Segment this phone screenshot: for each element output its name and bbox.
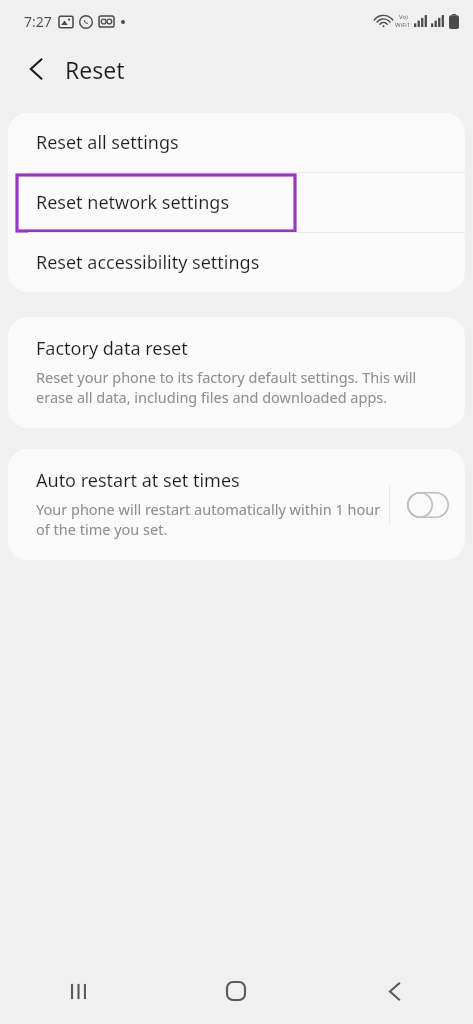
button[interactable]: Reset accessibility settings (8, 233, 465, 292)
staticText: Vo) (399, 13, 408, 21)
button[interactable]: Auto restart toggle, off (407, 492, 449, 518)
button[interactable]: Back (315, 958, 473, 1024)
button[interactable]: Recents (0, 958, 157, 1024)
staticText: Reset your phone to its factory default … (36, 367, 443, 408)
button[interactable]: Reset all settings (8, 113, 465, 172)
staticText: Reset all settings (36, 130, 179, 155)
staticText: Auto restart at set times (36, 468, 240, 493)
staticText: Reset accessibility settings (36, 250, 260, 275)
staticText: Reset network settings (36, 190, 230, 215)
button[interactable]: Reset network settings (8, 173, 465, 232)
button[interactable]: Home (157, 958, 315, 1024)
staticText: Reset (65, 54, 125, 85)
staticText: WiFi1 (395, 21, 411, 29)
staticText: Your phone will restart automatically wi… (36, 499, 381, 540)
button[interactable]: Factory data reset (8, 317, 465, 428)
button[interactable]: Back (18, 51, 54, 87)
button[interactable]: Auto restart at set times (8, 449, 389, 560)
staticText: 7:27 (24, 12, 52, 31)
staticText: Factory data reset (36, 336, 188, 361)
